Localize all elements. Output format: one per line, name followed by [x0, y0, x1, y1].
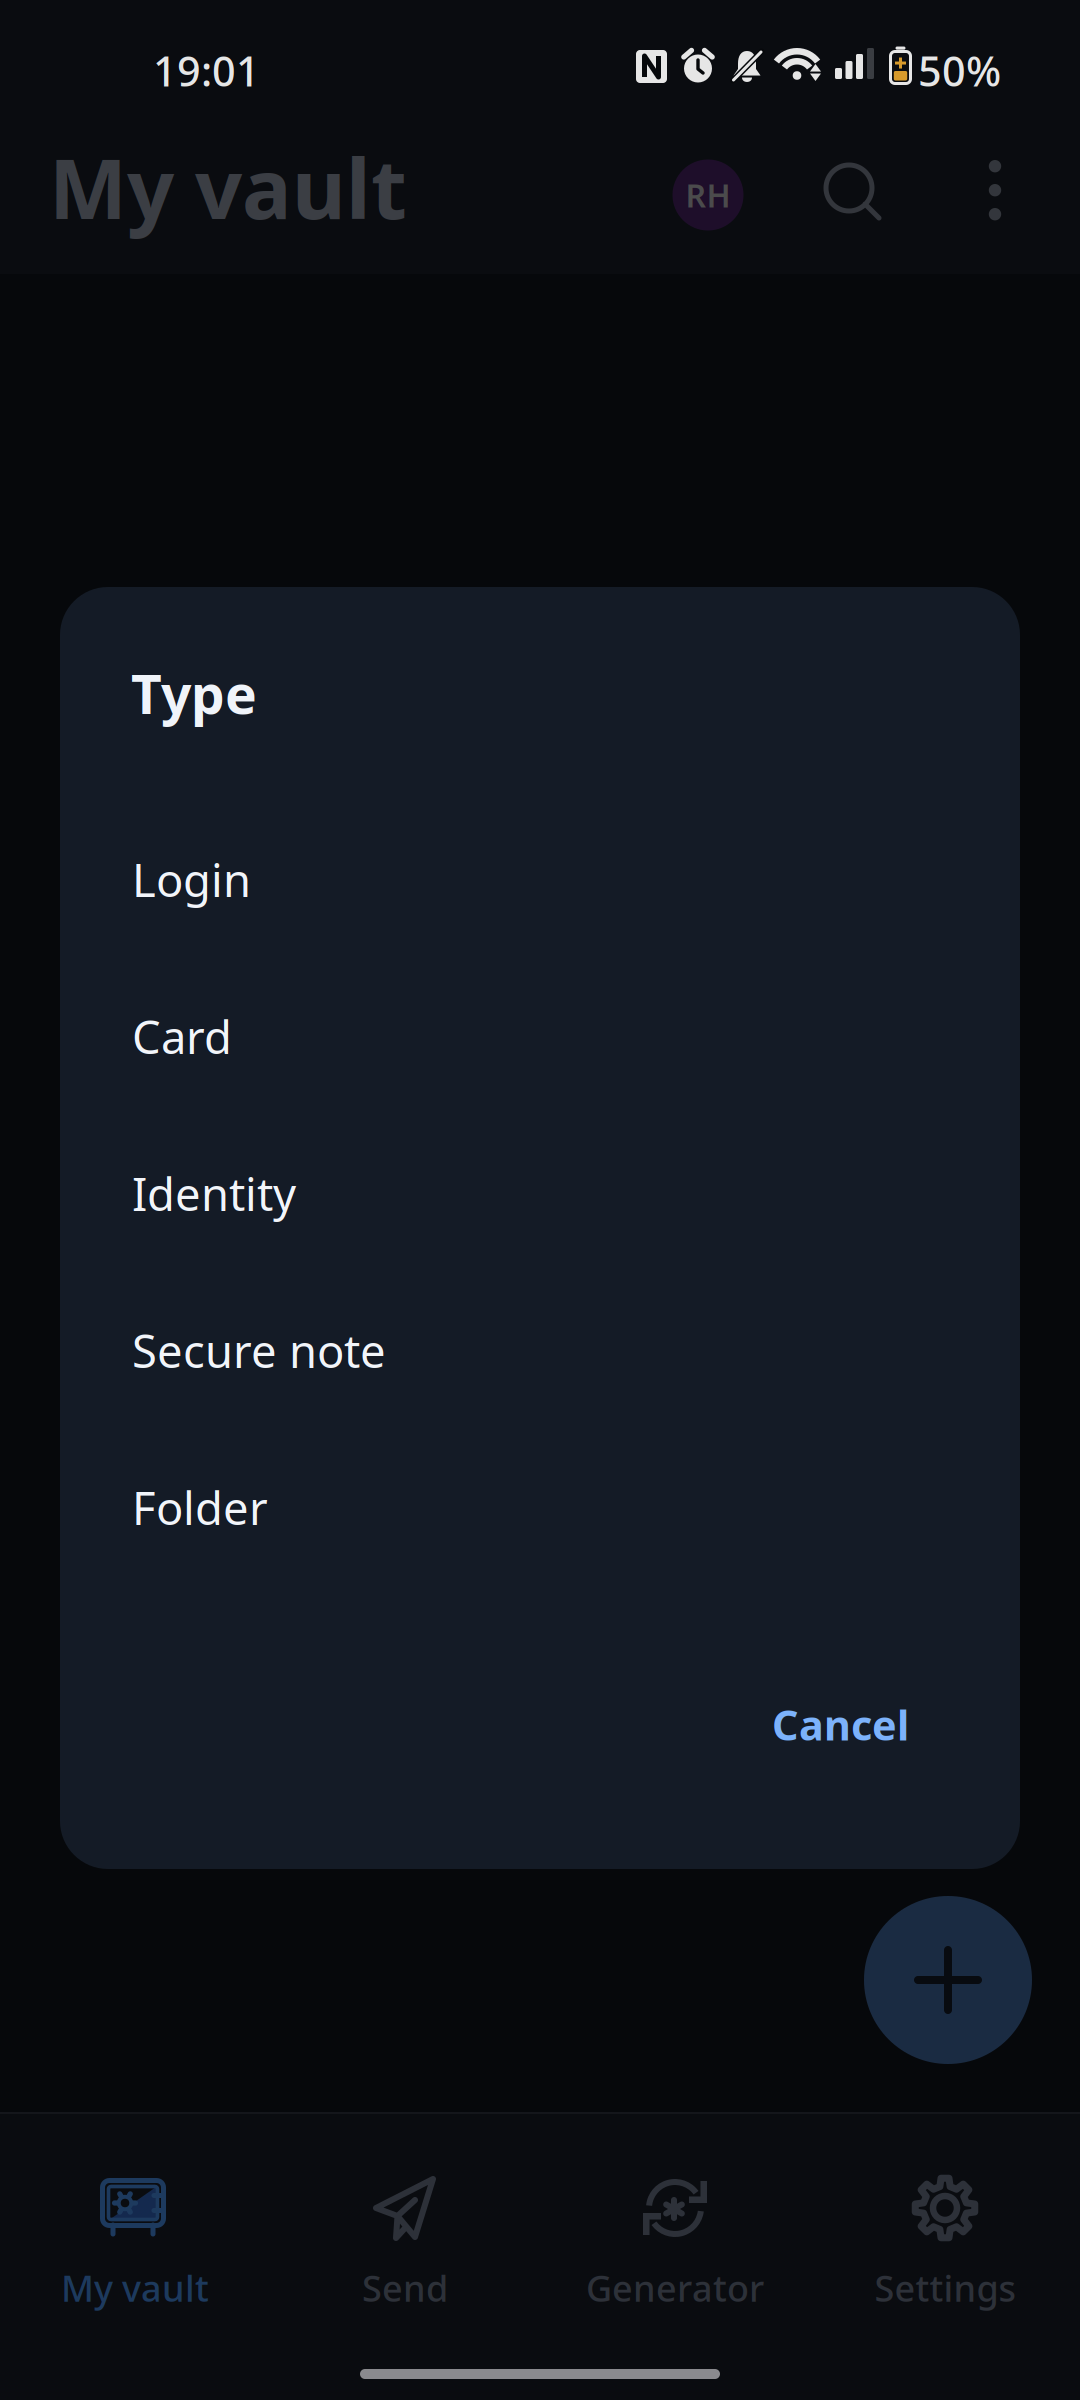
button[interactable]: My vault — [0, 2112, 270, 2400]
button[interactable]: Identity — [60, 1115, 1020, 1272]
button[interactable]: Login — [60, 801, 1020, 958]
button[interactable]: Send — [270, 2112, 540, 2400]
staticText: 50% — [918, 43, 1001, 98]
button[interactable]: Folder — [60, 1429, 1020, 1586]
staticText: Cancel — [772, 1697, 909, 1752]
staticText: My vault — [49, 132, 407, 242]
staticText: Settings — [874, 2264, 1015, 2312]
staticText: Folder — [132, 1477, 268, 1538]
staticText: Secure note — [132, 1320, 386, 1381]
button[interactable]: Generator — [540, 2112, 810, 2400]
staticText: Type — [131, 658, 257, 729]
staticText: RH — [685, 174, 730, 216]
button[interactable]: Account RH — [654, 141, 762, 249]
staticText: Identity — [132, 1163, 296, 1224]
button[interactable]: Add item — [864, 1896, 1032, 2064]
button[interactable]: Search — [800, 141, 908, 249]
staticText: Login — [132, 849, 251, 910]
staticText: 19:01 — [153, 43, 260, 98]
button[interactable]: More options — [947, 137, 1043, 245]
button[interactable]: Cancel — [744, 1673, 937, 1776]
staticText: Card — [132, 1006, 232, 1067]
staticText: Send — [362, 2264, 448, 2312]
button[interactable]: Secure note — [60, 1272, 1020, 1429]
staticText: My vault — [61, 2264, 209, 2312]
button[interactable]: Card — [60, 958, 1020, 1115]
button[interactable]: Settings — [810, 2112, 1080, 2400]
staticText: Generator — [586, 2264, 764, 2312]
